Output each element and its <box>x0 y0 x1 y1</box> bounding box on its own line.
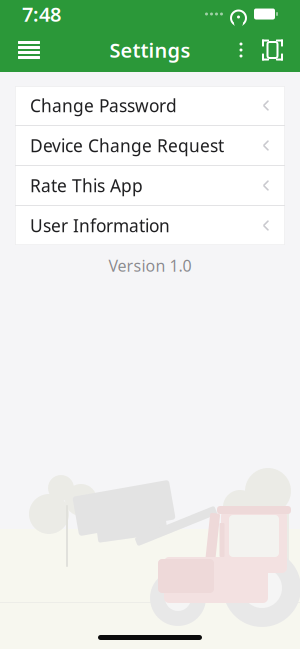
staticText: Version 1.0 <box>108 255 191 276</box>
button[interactable]: Rate This App <box>15 166 285 205</box>
button[interactable]: Device Change Request <box>15 126 285 165</box>
staticText: Settings <box>109 37 190 63</box>
button[interactable]: Change Password <box>15 86 285 125</box>
button[interactable]: User Information <box>15 206 285 245</box>
staticText: 7:48 <box>22 1 61 27</box>
staticText: User Information <box>30 214 170 237</box>
staticText: Device Change Request <box>30 134 224 157</box>
staticText: Rate This App <box>30 174 143 197</box>
button[interactable]: Scan device <box>252 31 293 68</box>
staticText: Change Password <box>30 94 177 117</box>
button[interactable]: Menu <box>7 29 51 70</box>
button[interactable]: More options <box>230 32 252 67</box>
